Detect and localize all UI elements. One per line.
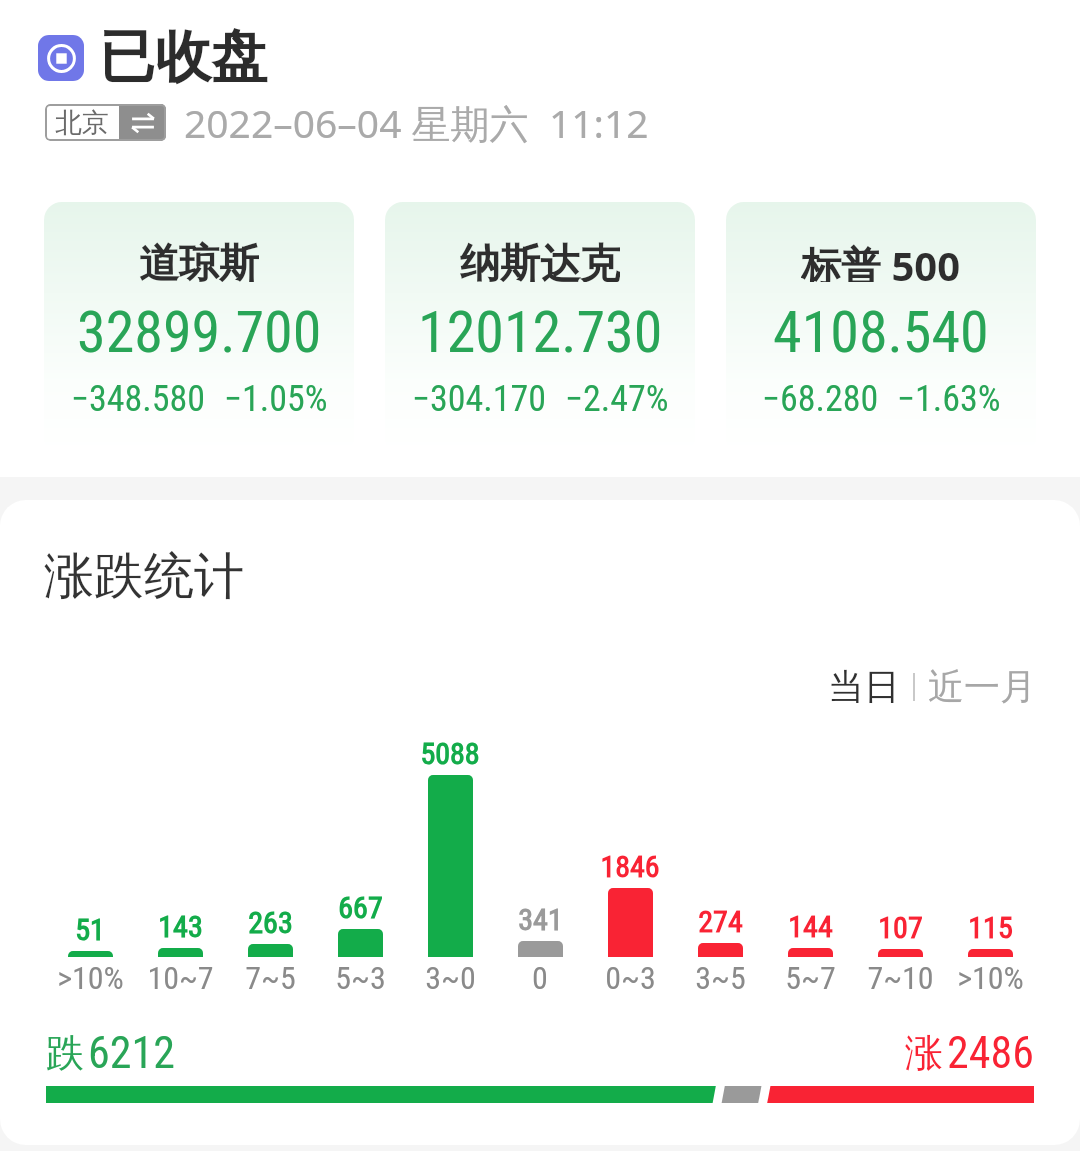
staticText: 标普 500: [801, 238, 961, 282]
staticText: 5~7: [785, 959, 836, 997]
staticText: 涨: [905, 1029, 943, 1077]
staticText: −2.47%: [565, 378, 669, 420]
staticText: 6212: [88, 1027, 175, 1079]
button[interactable]: 近一月: [928, 664, 1036, 709]
staticText: 2486: [947, 1027, 1034, 1079]
staticText: 115: [968, 910, 1013, 945]
staticText: −1.63%: [897, 378, 1001, 420]
button[interactable]: 道琼斯: [44, 202, 354, 454]
staticText: −68.280: [762, 378, 879, 420]
staticText: 北京: [55, 106, 109, 140]
staticText: 263: [248, 905, 293, 940]
other: Market status: [38, 35, 84, 81]
button[interactable]: 北京: [45, 104, 166, 141]
button[interactable]: 纳斯达克: [385, 202, 695, 454]
staticText: 12012.730: [418, 298, 663, 366]
staticText: 已收盘: [99, 22, 267, 93]
staticText: 当日: [828, 664, 900, 709]
staticText: 近一月: [928, 664, 1036, 709]
staticText: 2022–06–04 星期六 11:12: [184, 96, 649, 149]
staticText: 107: [878, 910, 923, 945]
staticText: 274: [698, 904, 743, 939]
staticText: 667: [338, 890, 383, 925]
staticText: 144: [788, 909, 833, 944]
staticText: −348.580: [71, 378, 206, 420]
button[interactable]: 当日: [828, 664, 900, 709]
staticText: 0~3: [605, 959, 656, 997]
staticText: −304.170: [412, 378, 547, 420]
staticText: 32899.700: [77, 298, 322, 366]
staticText: 143: [158, 909, 203, 944]
staticText: −1.05%: [224, 378, 328, 420]
staticText: 51: [75, 912, 105, 947]
staticText: 5~3: [335, 959, 386, 997]
staticText: 1846: [600, 849, 660, 884]
staticText: >10%: [957, 959, 1024, 997]
staticText: 5088: [420, 736, 480, 771]
staticText: 341: [518, 902, 563, 937]
staticText: 3~5: [695, 959, 746, 997]
staticText: 4108.540: [773, 298, 989, 366]
button[interactable]: 标普 500: [726, 202, 1036, 454]
staticText: >10%: [57, 959, 124, 997]
staticText: 跌: [46, 1029, 84, 1077]
staticText: 涨跌统计: [44, 545, 244, 608]
staticText: 道琼斯: [139, 238, 259, 282]
staticText: 10~7: [147, 959, 214, 997]
staticText: 纳斯达克: [460, 238, 620, 282]
staticText: 7~5: [245, 959, 296, 997]
staticText: 0: [532, 959, 548, 997]
staticText: 3~0: [425, 959, 476, 997]
staticText: 7~10: [867, 959, 934, 997]
